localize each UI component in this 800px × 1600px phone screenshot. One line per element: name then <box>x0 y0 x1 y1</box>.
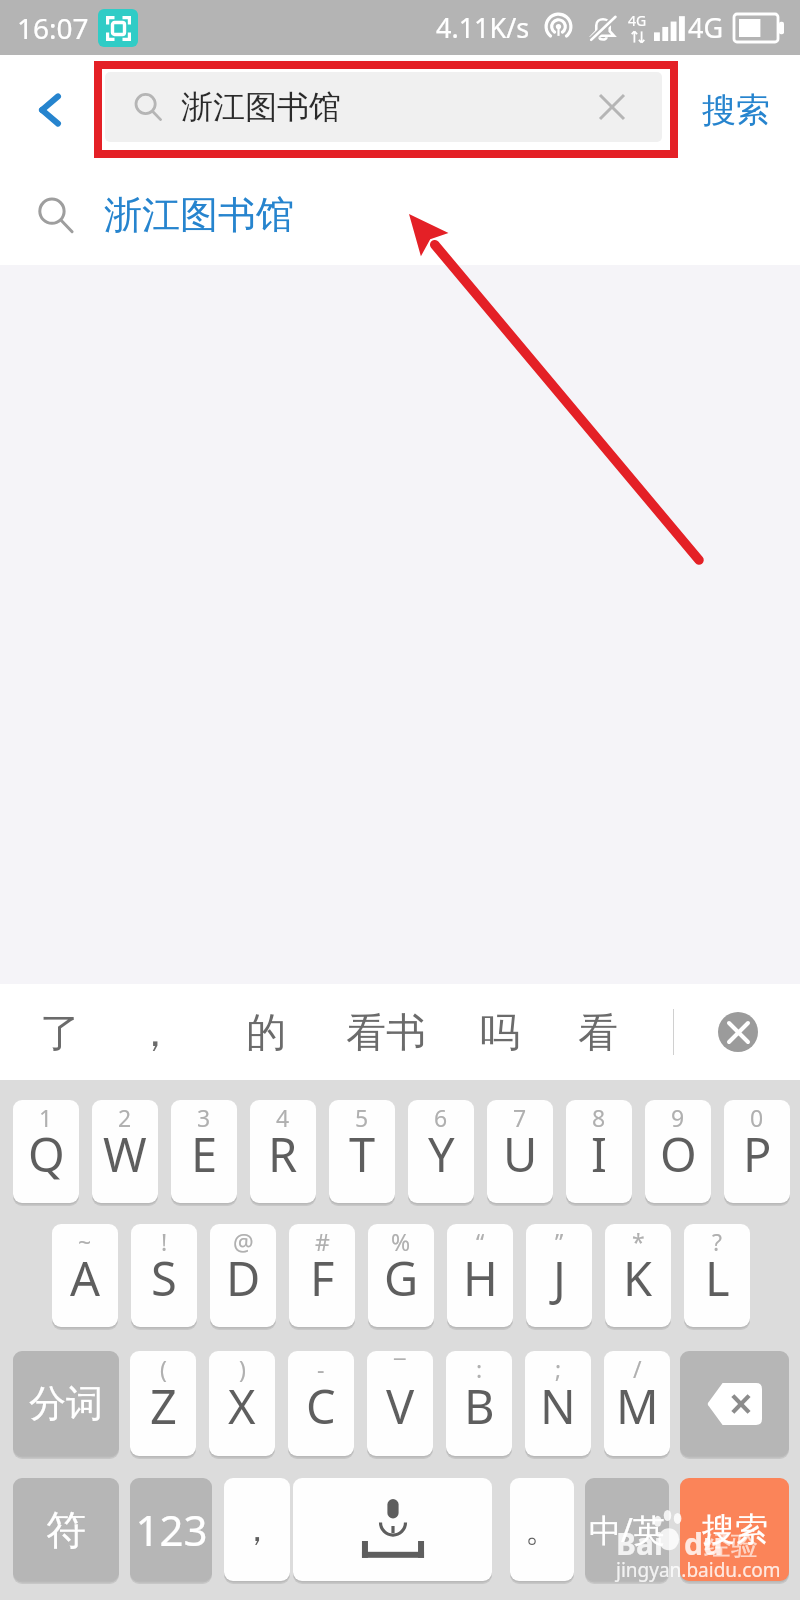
staticText: 4.11K/s <box>436 9 530 46</box>
staticText: A <box>70 1246 101 1310</box>
staticText: 。 <box>525 1508 559 1551</box>
button[interactable]: 7 <box>487 1100 553 1203</box>
button[interactable]: 分词 <box>13 1351 119 1456</box>
staticText: “ <box>476 1226 485 1257</box>
staticText: 经验 <box>704 1529 758 1563</box>
staticText: 吗 <box>480 1007 520 1057</box>
staticText: # <box>315 1226 330 1257</box>
button[interactable]: 123 <box>130 1478 212 1581</box>
staticText: - <box>317 1353 325 1384</box>
staticText: Q <box>28 1122 65 1186</box>
button[interactable]: 符 <box>13 1478 119 1581</box>
button[interactable]: Clear <box>562 72 662 142</box>
staticText: 中/英 <box>589 1508 665 1552</box>
button[interactable]: Backspace <box>680 1351 789 1456</box>
button[interactable]: ~ <box>52 1224 118 1327</box>
staticText: / <box>633 1353 642 1384</box>
button[interactable]: 1 <box>13 1100 79 1203</box>
staticText: 看书 <box>346 1007 426 1057</box>
staticText: 符 <box>46 1505 86 1555</box>
staticText: Bai <box>616 1523 663 1564</box>
button[interactable]: ( <box>130 1351 196 1456</box>
button[interactable]: 中/英 <box>585 1478 669 1581</box>
button[interactable]: 0 <box>724 1100 790 1203</box>
staticText: 的 <box>246 1007 286 1057</box>
staticText: 4G <box>628 11 647 30</box>
button[interactable]: 浙江图书馆 <box>105 72 662 142</box>
button[interactable]: ， <box>224 1478 290 1581</box>
staticText: 9 <box>671 1102 685 1133</box>
staticText: Z <box>150 1374 177 1438</box>
staticText: V <box>386 1374 415 1438</box>
button[interactable]: ， <box>129 992 181 1072</box>
staticText: C <box>306 1374 336 1438</box>
button[interactable]: “ <box>447 1224 513 1327</box>
button[interactable]: - <box>288 1351 354 1456</box>
button[interactable]: 2 <box>92 1100 158 1203</box>
button[interactable]: 看书 <box>340 992 432 1072</box>
staticText: du <box>684 1523 723 1564</box>
button[interactable]: 9 <box>645 1100 711 1203</box>
button[interactable]: ” <box>526 1224 592 1327</box>
staticText: L <box>705 1246 730 1310</box>
staticText: 了 <box>40 1007 80 1057</box>
button[interactable]: Close keyboard <box>700 984 776 1080</box>
button[interactable]: # <box>289 1224 355 1327</box>
staticText: 5 <box>355 1102 369 1133</box>
staticText: jingyan.baidu.com <box>616 1557 781 1583</box>
button[interactable]: * <box>605 1224 671 1327</box>
button[interactable]: 4 <box>250 1100 316 1203</box>
staticText: 看 <box>578 1007 618 1057</box>
button[interactable]: ) <box>209 1351 275 1456</box>
staticText: W <box>103 1122 147 1186</box>
button[interactable]: 3 <box>171 1100 237 1203</box>
staticText: 1 <box>39 1102 53 1133</box>
staticText: 3 <box>197 1102 211 1133</box>
staticText: % <box>391 1226 411 1257</box>
staticText: 6 <box>434 1102 448 1133</box>
staticText: * <box>632 1226 645 1257</box>
button[interactable]: 5 <box>329 1100 395 1203</box>
staticText: H <box>463 1246 498 1310</box>
staticText: ¯ <box>394 1353 406 1384</box>
button[interactable]: % <box>368 1224 434 1327</box>
staticText: ， <box>135 1007 175 1057</box>
button[interactable]: 8 <box>566 1100 632 1203</box>
staticText: 7 <box>513 1102 527 1133</box>
staticText: ” <box>555 1226 564 1257</box>
staticText: D <box>226 1246 261 1310</box>
button[interactable]: ! <box>131 1224 197 1327</box>
button[interactable]: ; <box>525 1351 591 1456</box>
button[interactable]: Back <box>20 80 80 140</box>
staticText: Y <box>428 1122 455 1186</box>
staticText: N <box>540 1374 576 1438</box>
button[interactable]: ¯ <box>367 1351 433 1456</box>
button[interactable]: 看 <box>572 992 624 1072</box>
staticText: 16:07 <box>17 9 89 47</box>
button[interactable]: : <box>446 1351 512 1456</box>
button[interactable]: 。 <box>510 1478 574 1581</box>
staticText: M <box>616 1374 659 1438</box>
staticText: U <box>503 1122 538 1186</box>
staticText: 搜索 <box>702 1509 768 1551</box>
button[interactable]: ? <box>684 1224 750 1327</box>
button[interactable]: 6 <box>408 1100 474 1203</box>
button[interactable]: Space <box>293 1478 492 1581</box>
staticText: X <box>228 1374 256 1438</box>
button[interactable]: @ <box>210 1224 276 1327</box>
button[interactable]: / <box>604 1351 670 1456</box>
staticText: T <box>349 1122 376 1186</box>
staticText: ~ <box>78 1226 92 1257</box>
staticText: : <box>476 1353 483 1384</box>
button[interactable]: 浙江图书馆 <box>0 165 800 265</box>
staticText: 4G <box>688 9 724 46</box>
button[interactable]: 搜索 <box>680 1478 789 1581</box>
button[interactable]: 搜索 <box>686 55 786 165</box>
staticText: J <box>553 1246 566 1310</box>
staticText: 123 <box>135 1501 208 1558</box>
staticText: 分词 <box>29 1380 103 1427</box>
staticText: 浙江图书馆 <box>181 87 341 127</box>
button[interactable]: 了 <box>34 992 86 1072</box>
button[interactable]: 吗 <box>474 992 526 1072</box>
button[interactable]: 的 <box>240 992 292 1072</box>
